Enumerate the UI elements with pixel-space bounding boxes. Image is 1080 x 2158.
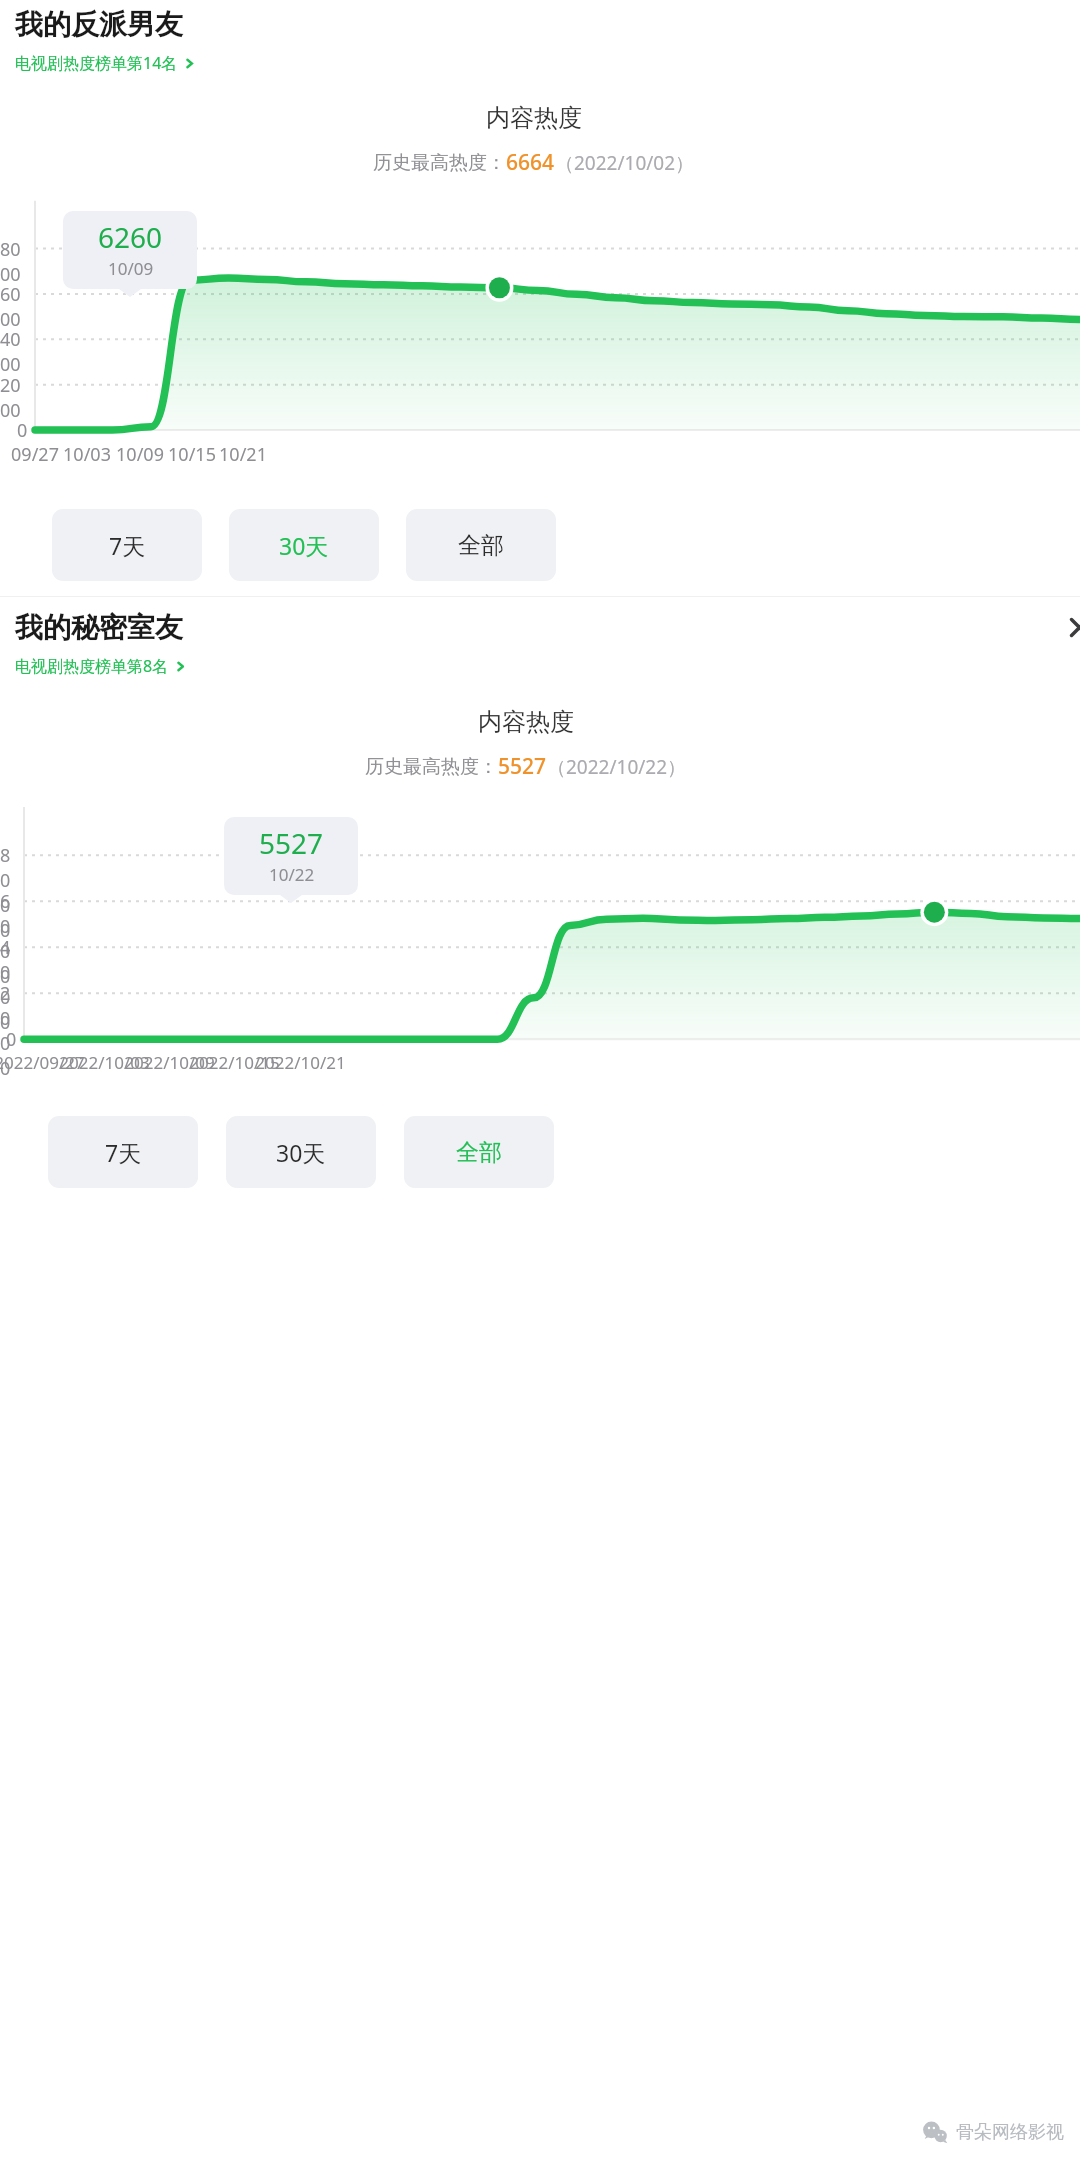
staticText: 30天 <box>279 530 329 561</box>
staticText: 2022/09/27 <box>0 1051 85 1074</box>
button[interactable]: 全部 <box>404 1116 554 1188</box>
staticText: 0 <box>6 1027 17 1052</box>
staticText: 2022/10/03 <box>59 1051 150 1074</box>
button[interactable]: 电视剧热度榜单第8名 <box>15 654 194 678</box>
staticText: 10/09 <box>108 257 154 280</box>
staticText: 内容热度 <box>486 103 582 133</box>
staticText: 10/09 <box>116 442 164 467</box>
button[interactable]: 30天 <box>229 509 379 581</box>
staticText: 5527 <box>259 824 324 862</box>
staticText: 8000 <box>0 237 28 287</box>
staticText: 6260 <box>98 218 163 256</box>
staticText: 4000 <box>0 935 17 1035</box>
staticText: 2000 <box>0 981 17 1081</box>
staticText: 骨朵网络影视 <box>956 2121 1064 2144</box>
button[interactable]: 7天 <box>52 509 202 581</box>
staticText: 历史最高热度： <box>365 755 498 779</box>
staticText: 内容热度 <box>478 707 574 737</box>
staticText: 4000 <box>0 327 28 377</box>
staticText: 2022/10/09 <box>124 1051 215 1074</box>
staticText: 0 <box>17 418 28 443</box>
staticText: 10/15 <box>168 442 216 467</box>
staticText: 2022/10/21 <box>255 1051 346 1074</box>
button[interactable]: 30天 <box>226 1116 376 1188</box>
staticText: 10/22 <box>269 863 315 886</box>
staticText: 8000 <box>0 843 17 943</box>
button[interactable]: 全部 <box>406 509 556 581</box>
staticText: 6000 <box>0 889 17 989</box>
staticText: 全部 <box>456 1138 502 1167</box>
staticText: 5527 <box>498 752 547 781</box>
staticText: 我的秘密室友 <box>15 610 183 645</box>
staticText: 2022/10/15 <box>189 1051 280 1074</box>
staticText: 10/21 <box>219 442 267 467</box>
staticText: 电视剧热度榜单第8名 <box>15 655 169 677</box>
staticText: 30天 <box>276 1137 326 1168</box>
staticText: 09/27 <box>11 442 59 467</box>
button[interactable]: 电视剧热度榜单第14名 <box>15 51 203 75</box>
staticText: 历史最高热度： <box>373 151 506 175</box>
button[interactable]: 7天 <box>48 1116 198 1188</box>
staticText: 10/03 <box>63 442 111 467</box>
staticText: 7天 <box>105 1137 142 1168</box>
staticText: 全部 <box>458 531 504 560</box>
staticText: （2022/10/02） <box>555 150 695 176</box>
staticText: 7天 <box>109 530 146 561</box>
button[interactable]: Close <box>1062 610 1080 644</box>
staticText: 2000 <box>0 373 28 423</box>
staticText: 6664 <box>506 148 555 177</box>
staticText: （2022/10/22） <box>547 754 687 780</box>
staticText: 电视剧热度榜单第14名 <box>15 52 178 74</box>
staticText: 我的反派男友 <box>15 7 183 42</box>
staticText: 6000 <box>0 282 28 332</box>
